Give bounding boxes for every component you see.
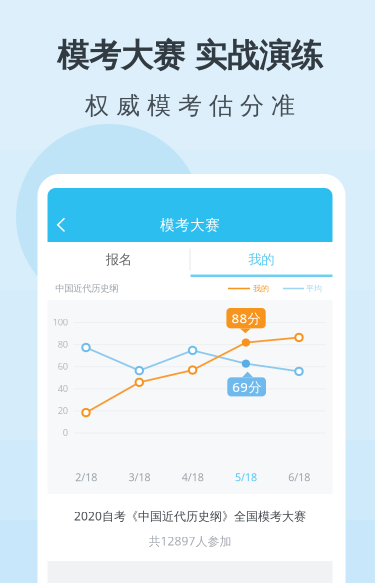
- staticText: 5/18: [235, 470, 257, 484]
- staticText: 6/18: [288, 470, 310, 484]
- staticText: 69分: [232, 378, 261, 396]
- staticText: 100: [53, 316, 68, 328]
- staticText: 88分: [232, 309, 261, 327]
- staticText: 平均: [306, 284, 322, 293]
- staticText: 我的: [248, 251, 274, 268]
- staticText: 2/18: [75, 470, 97, 484]
- staticText: 60: [58, 360, 68, 372]
- staticText: 共12897人参加: [148, 533, 231, 549]
- staticText: 模考大赛 实战演练: [57, 36, 323, 75]
- staticText: 中国近代历史纲: [55, 283, 118, 294]
- staticText: 我的: [253, 284, 269, 293]
- staticText: 0: [63, 426, 68, 439]
- staticText: 权 威 模 考 估 分 准: [85, 91, 295, 120]
- button[interactable]: Back: [47, 211, 84, 239]
- staticText: 报名: [106, 251, 132, 268]
- button[interactable]: 报名: [47, 242, 190, 277]
- staticText: 80: [58, 338, 68, 350]
- staticText: 模考大赛: [160, 216, 220, 234]
- staticText: 3/18: [128, 470, 150, 484]
- staticText: 20: [58, 404, 68, 417]
- staticText: 4/18: [182, 470, 204, 484]
- staticText: 40: [58, 382, 68, 394]
- button[interactable]: 我的: [190, 242, 332, 277]
- staticText: 2020自考《中国近代历史纲》全国模考大赛: [74, 508, 306, 524]
